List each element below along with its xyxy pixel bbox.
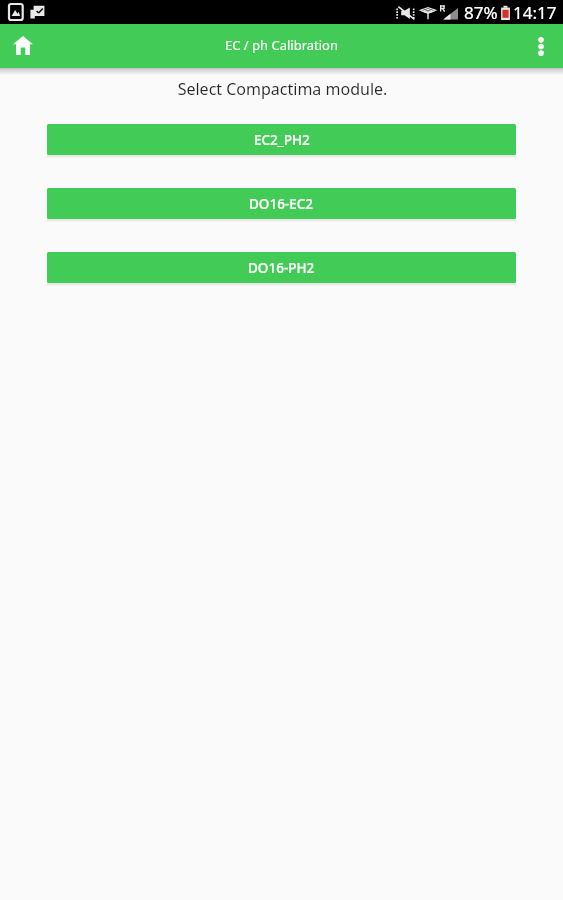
staticText: DO16-EC2 <box>249 195 314 213</box>
button[interactable]: EC2_PH2 <box>47 124 516 155</box>
staticText: DO16-PH2 <box>248 259 315 277</box>
button[interactable]: Home <box>2 24 44 66</box>
staticText: 87% <box>464 1 498 24</box>
button[interactable]: More options <box>520 25 562 67</box>
staticText: EC / ph Calibration <box>225 36 339 54</box>
staticText: Select Compactima module. <box>1 78 563 100</box>
staticText: 14:17 <box>513 1 557 24</box>
button[interactable]: DO16-EC2 <box>47 188 516 219</box>
staticText: EC2_PH2 <box>254 131 310 149</box>
button[interactable]: DO16-PH2 <box>47 252 516 283</box>
